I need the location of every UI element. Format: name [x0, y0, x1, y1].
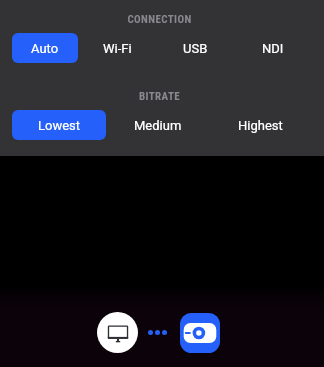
button[interactable]: More options — [148, 330, 167, 335]
button[interactable]: Display output — [97, 312, 138, 353]
button[interactable]: NDI — [234, 33, 312, 63]
staticText: Lowest — [38, 118, 81, 133]
button[interactable]: Wi-Fi — [78, 33, 156, 63]
button[interactable]: Lowest — [12, 110, 106, 140]
staticText: Medium — [134, 118, 182, 133]
button[interactable]: Auto — [12, 33, 78, 63]
staticText: CONNECTION — [0, 13, 319, 26]
button[interactable]: Highest — [209, 110, 312, 140]
staticText: Wi-Fi — [103, 41, 132, 56]
staticText: Highest — [238, 118, 283, 133]
staticText: NDI — [262, 41, 284, 56]
staticText: BITRATE — [0, 90, 319, 103]
button[interactable]: Switch camera — [180, 313, 220, 353]
button[interactable]: Medium — [106, 110, 209, 140]
staticText: Auto — [31, 41, 59, 56]
staticText: USB — [183, 41, 208, 56]
button[interactable]: USB — [156, 33, 234, 63]
